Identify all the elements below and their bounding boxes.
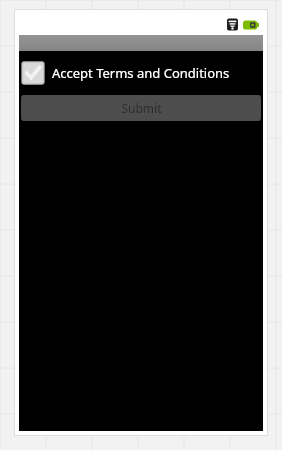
other: Accept terms checkbox	[21, 61, 45, 85]
button[interactable]: Accept terms checkbox	[19, 59, 263, 87]
other: Battery	[243, 19, 259, 31]
other: Signal strength	[226, 18, 239, 31]
staticText: Accept Terms and Conditions	[52, 64, 230, 82]
staticText: Submit	[121, 100, 162, 116]
button[interactable]: Submit	[21, 95, 261, 121]
